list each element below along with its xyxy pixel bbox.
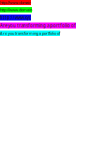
staticText: Are you transforming a portfolio of [0,22,76,28]
staticText: Are you transforming a portfolio of [0,30,60,36]
staticText: http://www.domain [0,0,31,5]
staticText: http://www.domain [0,7,32,12]
staticText: http://www.xyz [0,14,31,20]
